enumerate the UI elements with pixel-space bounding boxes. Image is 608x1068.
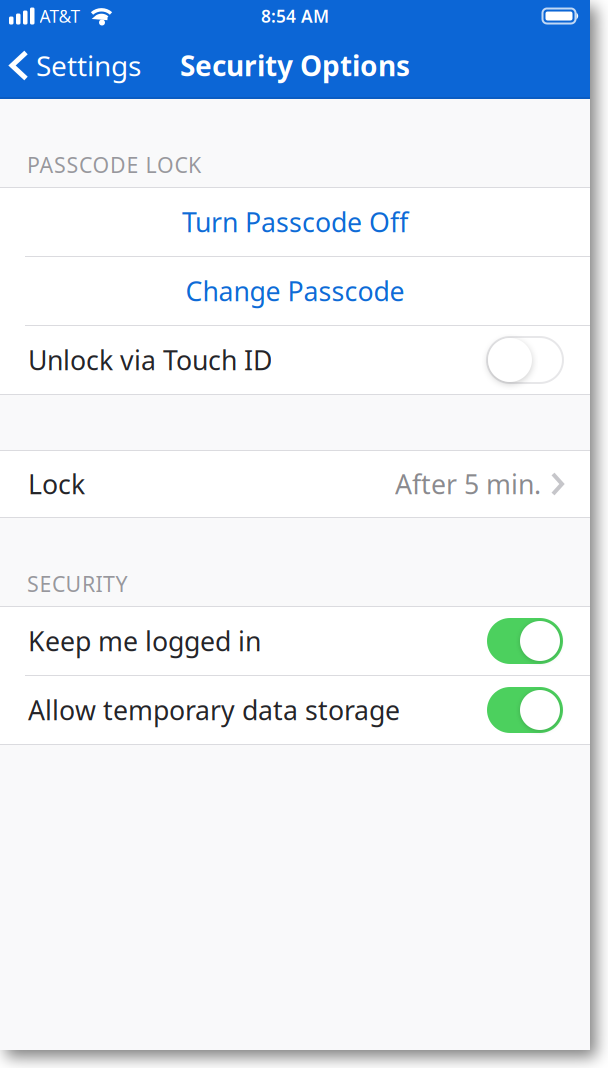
- button[interactable]: Turn Passcode Off: [0, 188, 590, 256]
- staticText: 8:54 AM: [261, 4, 329, 27]
- staticText: Change Passcode: [185, 273, 404, 309]
- button[interactable]: Lock: [0, 451, 590, 517]
- staticText: Keep me logged in: [28, 623, 261, 659]
- button[interactable]: Settings: [10, 47, 141, 84]
- button[interactable]: Keep me logged in: [0, 607, 590, 675]
- button[interactable]: Change Passcode: [0, 257, 590, 325]
- staticText: AT&T: [39, 4, 80, 27]
- staticText: SECURITY: [27, 570, 127, 598]
- staticText: Unlock via Touch ID: [28, 342, 272, 378]
- button[interactable]: Unlock via Touch ID: [0, 326, 590, 394]
- staticText: Turn Passcode Off: [182, 204, 408, 240]
- staticText: Lock: [28, 466, 85, 502]
- staticText: Allow temporary data storage: [28, 692, 400, 728]
- button[interactable]: Allow temporary data storage: [0, 676, 590, 744]
- staticText: Security Options: [180, 47, 410, 84]
- staticText: Settings: [36, 47, 141, 84]
- staticText: PASSCODE LOCK: [27, 151, 201, 179]
- staticText: After 5 min.: [395, 466, 541, 502]
